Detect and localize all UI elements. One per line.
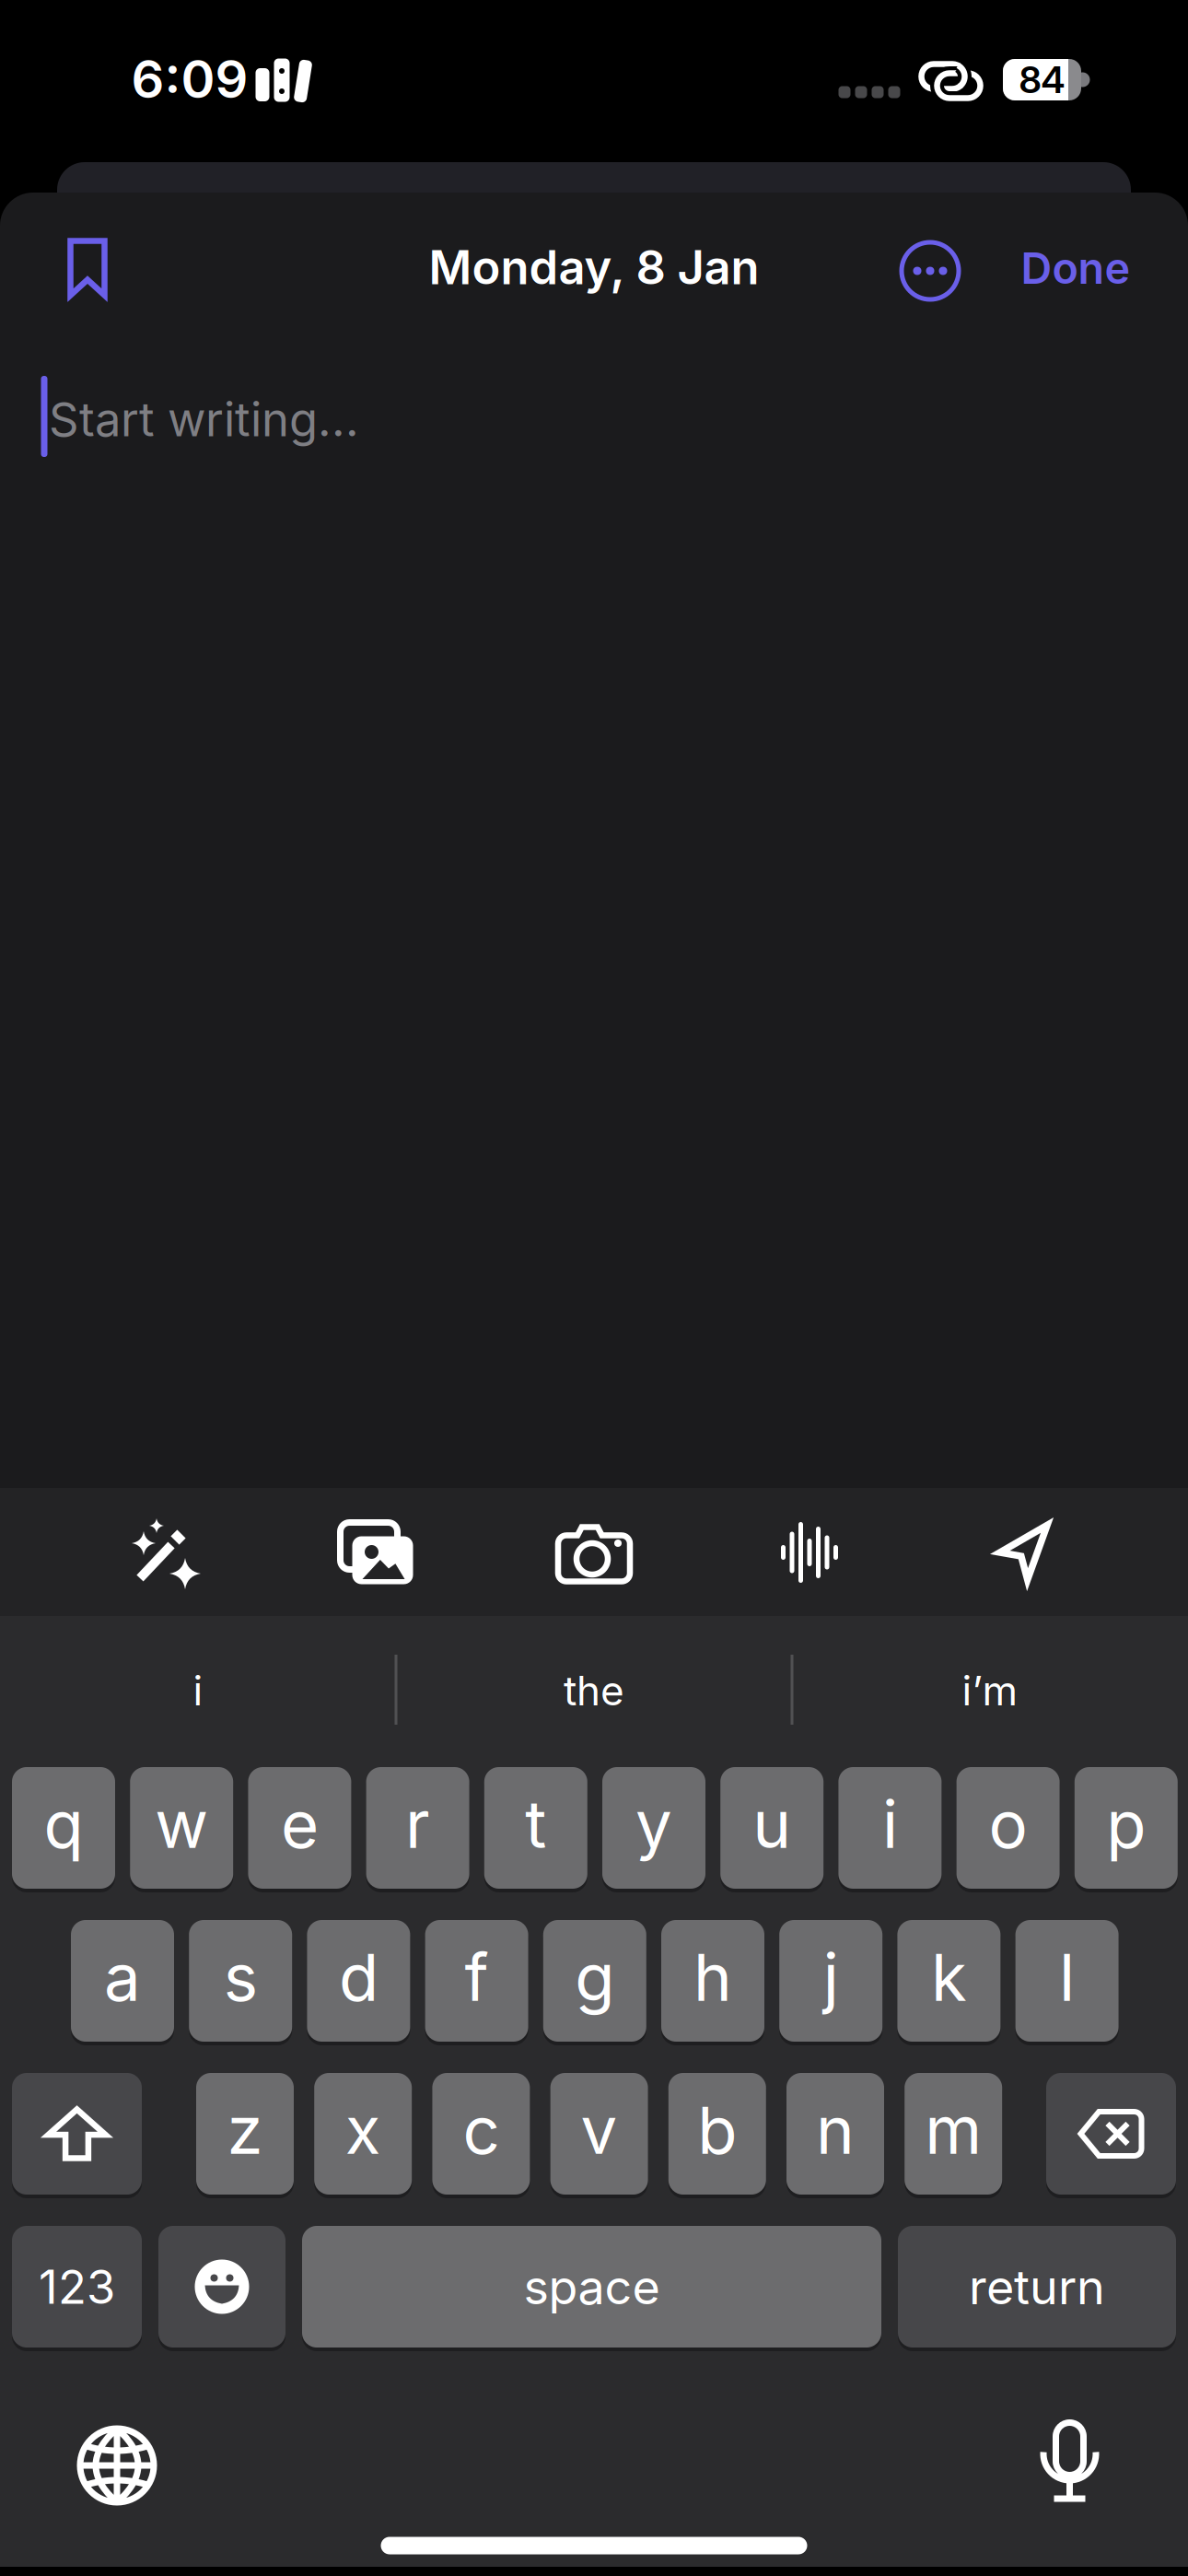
staticText: b	[697, 2092, 737, 2169]
button[interactable]: r	[366, 1767, 469, 1889]
button[interactable]: l	[1015, 1920, 1119, 2042]
button[interactable]: z	[196, 2073, 294, 2195]
button[interactable]: a	[71, 1920, 174, 2042]
button[interactable]: o	[956, 1767, 1060, 1889]
staticText: r	[405, 1786, 430, 1863]
staticText: 123	[39, 2259, 115, 2314]
button[interactable]: Dictate	[1042, 2423, 1097, 2502]
staticText: x	[345, 2092, 381, 2169]
staticText: e	[281, 1786, 319, 1863]
button[interactable]: t	[484, 1767, 587, 1889]
staticText: z	[227, 2092, 263, 2169]
button[interactable]: Location	[998, 1523, 1050, 1581]
button[interactable]: v	[550, 2073, 648, 2195]
button[interactable]: u	[720, 1767, 823, 1889]
button[interactable]: Next keyboard	[80, 2429, 154, 2502]
button[interactable]: return	[898, 2226, 1176, 2348]
staticText: return	[969, 2258, 1105, 2315]
staticText: c	[463, 2092, 500, 2169]
button[interactable]: w	[130, 1767, 233, 1889]
staticText: space	[524, 2258, 660, 2315]
button[interactable]: f	[425, 1920, 528, 2042]
staticText: o	[989, 1786, 1027, 1863]
button[interactable]: b	[668, 2073, 766, 2195]
button[interactable]: 123	[12, 2226, 142, 2348]
button[interactable]: the	[419, 1645, 769, 1737]
staticText: g	[575, 1939, 615, 2016]
button[interactable]: Camera	[558, 1525, 630, 1582]
button[interactable]: Bookmark	[68, 238, 107, 298]
staticText: 84	[1019, 58, 1065, 101]
button[interactable]: h	[661, 1920, 764, 2042]
staticText: Start writing...	[49, 392, 359, 447]
button[interactable]: p	[1075, 1767, 1178, 1889]
staticText: s	[224, 1939, 258, 2016]
staticText: d	[339, 1939, 378, 2016]
button[interactable]: q	[12, 1767, 115, 1889]
button[interactable]: j	[779, 1920, 882, 2042]
staticText: m	[925, 2092, 982, 2169]
staticText: i’m	[962, 1667, 1018, 1714]
staticText: a	[104, 1939, 141, 2016]
button[interactable]: i	[838, 1767, 942, 1889]
staticText: Monday, 8 Jan	[429, 240, 759, 295]
staticText: k	[931, 1939, 967, 2016]
staticText: q	[44, 1786, 83, 1863]
button[interactable]: More	[901, 241, 960, 300]
staticText: t	[525, 1786, 546, 1863]
staticText: j	[823, 1939, 839, 2016]
staticText: i	[882, 1786, 898, 1863]
staticText: h	[693, 1939, 732, 2016]
staticText: w	[155, 1786, 208, 1863]
staticText: l	[1059, 1939, 1075, 2016]
button[interactable]: Writing tools	[136, 1523, 195, 1582]
staticText: p	[1106, 1786, 1146, 1863]
button[interactable]: y	[602, 1767, 705, 1889]
button[interactable]: Shift	[12, 2073, 142, 2195]
staticText: the	[564, 1667, 624, 1714]
button[interactable]: Delete	[1046, 2073, 1176, 2195]
staticText: v	[581, 2092, 618, 2169]
staticText: y	[635, 1786, 672, 1863]
staticText: n	[816, 2092, 855, 2169]
button[interactable]: space	[302, 2226, 881, 2348]
button[interactable]: Audio	[780, 1521, 839, 1584]
staticText: 6:09	[131, 49, 248, 110]
button[interactable]: e	[248, 1767, 351, 1889]
button[interactable]: g	[543, 1920, 646, 2042]
staticText: u	[753, 1786, 791, 1863]
button[interactable]: n	[786, 2073, 884, 2195]
button[interactable]: Done	[1021, 243, 1130, 294]
button[interactable]: k	[897, 1920, 1000, 2042]
button[interactable]: x	[314, 2073, 412, 2195]
button[interactable]: d	[307, 1920, 410, 2042]
button[interactable]: m	[905, 2073, 1002, 2195]
button[interactable]: Photos	[340, 1522, 413, 1584]
staticText: i	[193, 1667, 203, 1714]
staticText: Done	[1021, 243, 1130, 294]
button[interactable]: c	[432, 2073, 530, 2195]
staticText: f	[465, 1939, 489, 2016]
button[interactable]: s	[189, 1920, 292, 2042]
button[interactable]: i	[23, 1645, 373, 1737]
button[interactable]: Emoji	[158, 2226, 285, 2348]
button[interactable]: i’m	[815, 1645, 1165, 1737]
